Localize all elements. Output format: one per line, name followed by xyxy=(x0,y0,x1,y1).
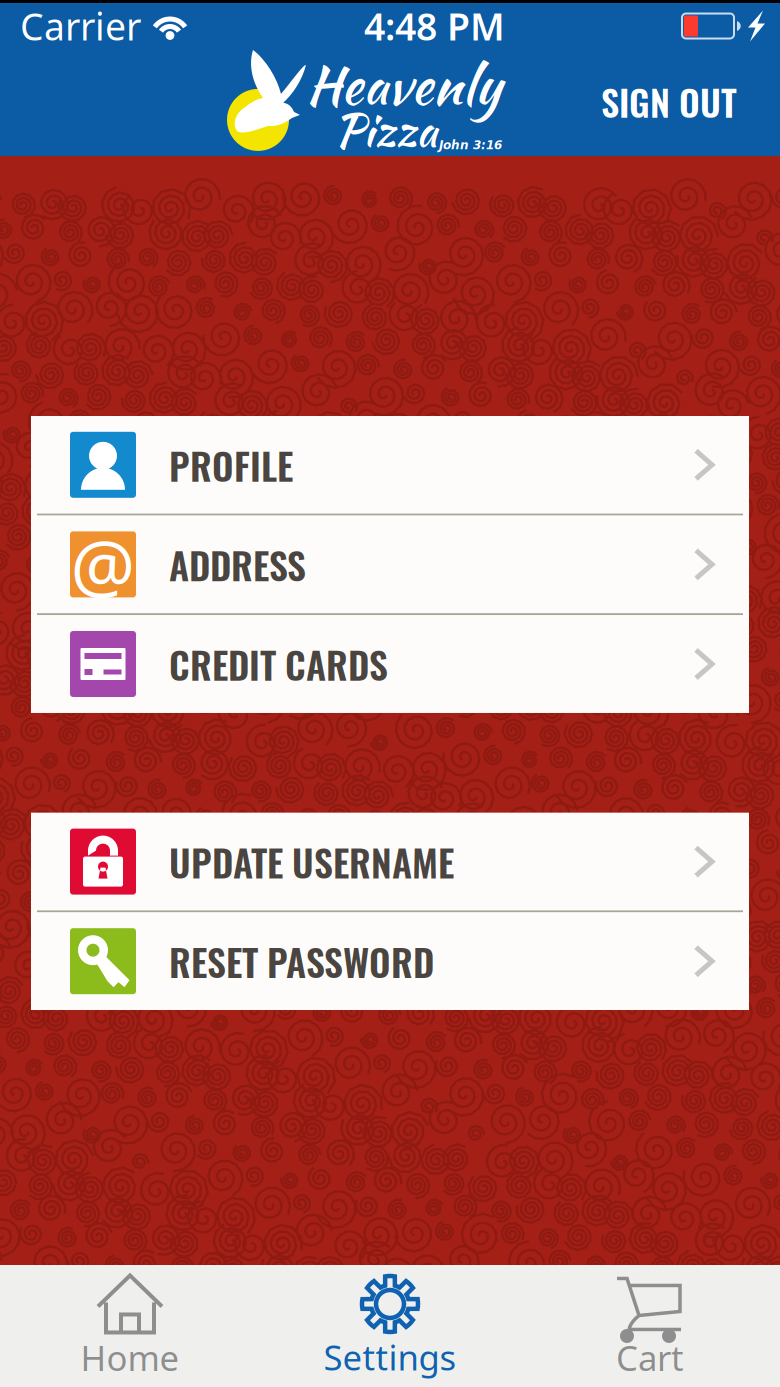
staticText: John 3:16 xyxy=(439,138,502,152)
button[interactable]: SIGN OUT xyxy=(585,59,753,144)
staticText: Heavenly xyxy=(306,46,501,123)
staticText: SIGN OUT xyxy=(601,75,737,128)
button[interactable]: PROFILE xyxy=(31,416,749,514)
staticText: Home xyxy=(80,1334,179,1380)
staticText: 4:48 PM xyxy=(364,1,505,51)
staticText: PROFILE xyxy=(169,437,293,492)
button[interactable]: Cart xyxy=(520,1257,780,1387)
staticText: RESET PASSWORD xyxy=(169,933,434,989)
staticText: CREDIT CARDS xyxy=(169,636,388,692)
staticText: UPDATE USERNAME xyxy=(169,834,454,889)
button[interactable]: Home xyxy=(0,1257,260,1387)
button[interactable]: CREDIT CARDS xyxy=(31,615,749,713)
button[interactable]: Settings xyxy=(260,1258,520,1387)
staticText: ADDRESS xyxy=(169,537,306,592)
button[interactable]: RESET PASSWORD xyxy=(31,912,749,1010)
staticText: Pizza xyxy=(334,97,437,163)
button[interactable]: UPDATE USERNAME xyxy=(31,813,749,910)
staticText: Settings xyxy=(323,1334,456,1380)
staticText: @ xyxy=(70,517,135,612)
staticText: Carrier xyxy=(20,1,141,51)
staticText: Cart xyxy=(616,1334,684,1380)
button[interactable]: @ xyxy=(31,516,749,613)
